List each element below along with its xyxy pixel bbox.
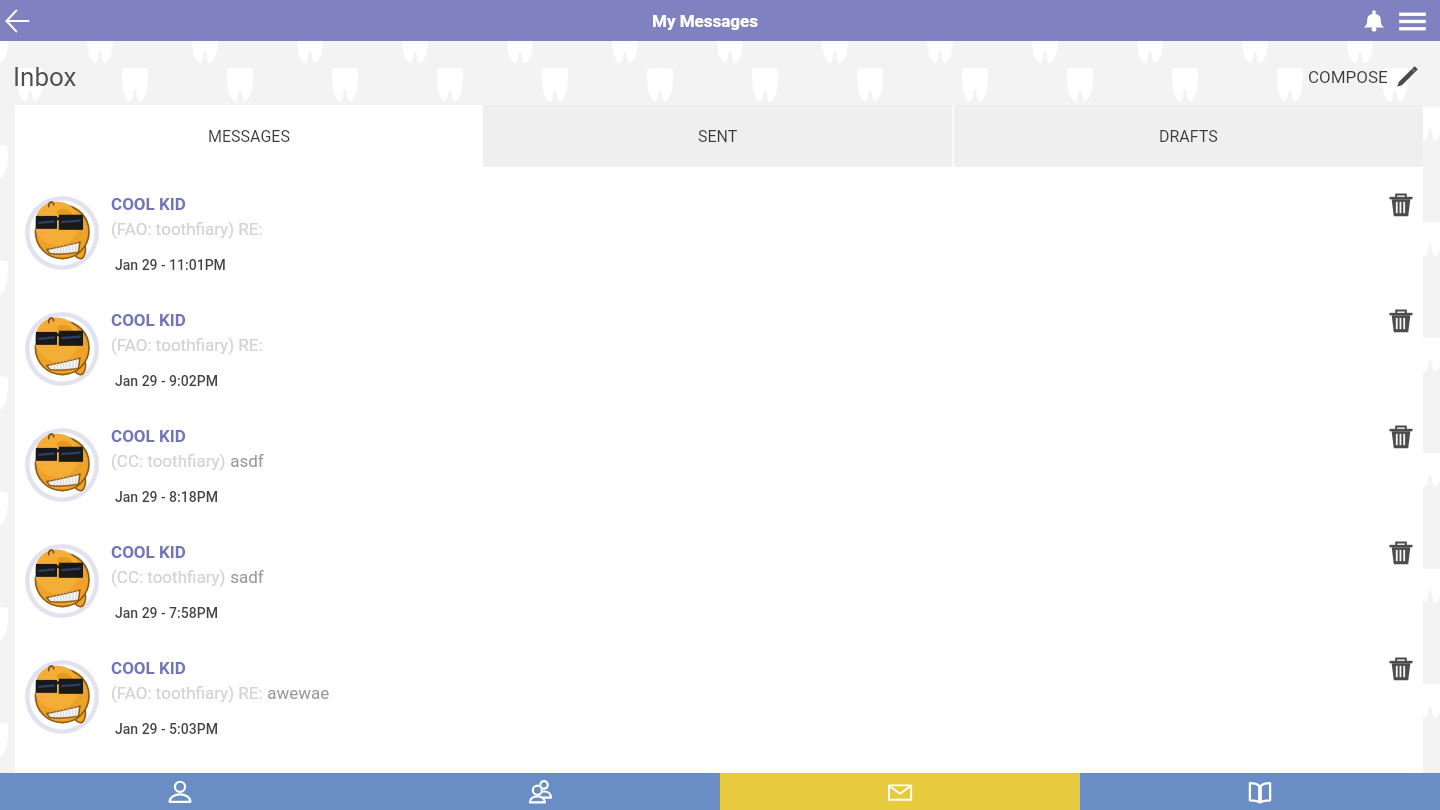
staticText: Inbox bbox=[13, 62, 77, 92]
button[interactable]: MESSAGES bbox=[15, 105, 483, 167]
staticText: (FAO: toothfiary) RE: bbox=[111, 219, 263, 239]
button[interactable]: Delete bbox=[1381, 185, 1421, 225]
button[interactable]: COOL KID bbox=[15, 399, 1423, 515]
staticText: MESSAGES bbox=[208, 127, 290, 146]
button[interactable]: COOL KID bbox=[15, 631, 1423, 747]
staticText: DRAFTS bbox=[1159, 127, 1218, 146]
staticText: Jan 29 - 9:02PM bbox=[115, 373, 218, 389]
button[interactable]: COOL KID bbox=[15, 167, 1423, 283]
staticText: COOL KID bbox=[111, 658, 186, 678]
staticText: (CC: toothfiary) bbox=[111, 451, 226, 471]
button[interactable]: SENT bbox=[483, 105, 952, 167]
staticText: Jan 29 - 5:03PM bbox=[115, 721, 218, 737]
staticText: COMPOSE bbox=[1308, 67, 1388, 87]
button[interactable]: COOL KID bbox=[15, 283, 1423, 399]
staticText: Jan 29 - 7:58PM bbox=[115, 605, 218, 621]
staticText: My Messages bbox=[652, 11, 759, 31]
staticText: SENT bbox=[698, 127, 738, 146]
button[interactable]: Directory bbox=[1080, 773, 1440, 810]
staticText: (FAO: toothfiary) RE: bbox=[111, 335, 263, 355]
staticText: COOL KID bbox=[111, 426, 186, 446]
button[interactable]: Messages bbox=[720, 773, 1080, 810]
staticText: Jan 29 - 11:01PM bbox=[115, 257, 226, 273]
button[interactable]: Delete bbox=[1381, 301, 1421, 341]
staticText: awewae bbox=[263, 683, 330, 703]
button[interactable]: Notifications bbox=[1355, 2, 1393, 40]
button[interactable]: Friends bbox=[360, 773, 720, 810]
button[interactable]: COMPOSE bbox=[1308, 65, 1419, 88]
button[interactable]: Menu bbox=[1393, 2, 1431, 40]
staticText: COOL KID bbox=[111, 194, 186, 214]
button[interactable]: DRAFTS bbox=[954, 105, 1423, 167]
staticText: (FAO: toothfiary) RE: bbox=[111, 683, 263, 703]
staticText: COOL KID bbox=[111, 310, 186, 330]
button[interactable]: Delete bbox=[1381, 649, 1421, 689]
button[interactable]: Delete bbox=[1381, 533, 1421, 573]
staticText: COOL KID bbox=[111, 542, 186, 562]
staticText: sadf bbox=[226, 567, 264, 587]
button[interactable]: COOL KID bbox=[15, 515, 1423, 631]
button[interactable]: Delete bbox=[1381, 417, 1421, 457]
staticText: (CC: toothfiary) bbox=[111, 567, 226, 587]
button[interactable]: Back bbox=[0, 1, 40, 41]
staticText: Jan 29 - 8:18PM bbox=[115, 489, 218, 505]
button[interactable]: Profile bbox=[0, 773, 360, 810]
staticText: asdf bbox=[226, 451, 264, 471]
